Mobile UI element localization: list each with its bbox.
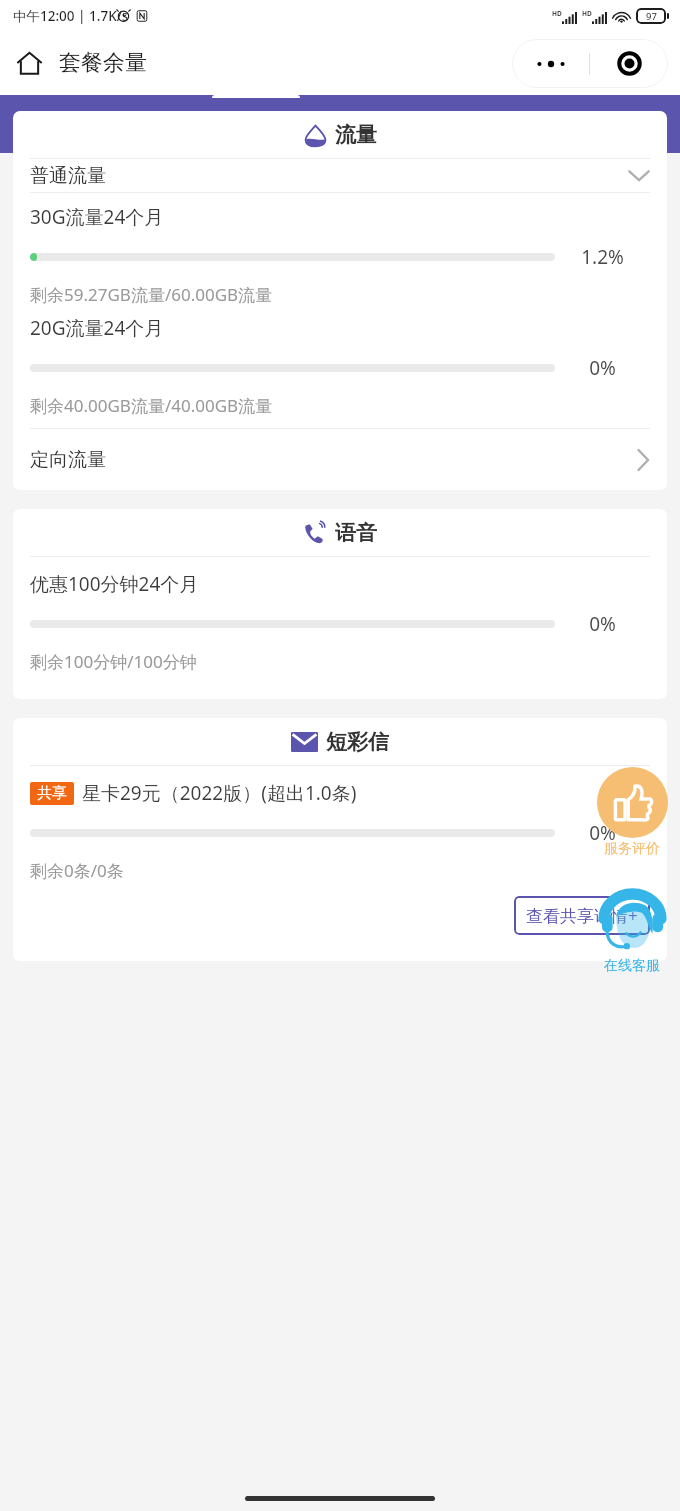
button[interactable]: 普通流量 <box>13 159 667 192</box>
staticText: HD <box>552 9 562 18</box>
staticText: 剩余40.00GB流量/40.00GB流量 <box>30 394 273 417</box>
staticText: 定向流量 <box>30 448 106 472</box>
button[interactable]: More options <box>512 39 589 88</box>
staticText: 普通流量 <box>30 164 106 188</box>
staticText: 0% <box>589 820 616 846</box>
staticText: 97 <box>646 10 657 23</box>
button[interactable]: Close mini program <box>590 39 668 88</box>
button[interactable]: 在线客服 <box>596 884 668 975</box>
staticText: 套餐余量 <box>59 49 147 77</box>
staticText: 流量 <box>335 122 377 148</box>
staticText: 剩余59.27GB流量/60.00GB流量 <box>30 283 273 306</box>
staticText: 1.2% <box>581 244 624 270</box>
staticText: 中午12:00 | 1.7K/s <box>13 7 129 25</box>
staticText: 0% <box>589 611 616 637</box>
button[interactable]: 查看共享详情+ <box>514 896 650 935</box>
staticText: 语音 <box>335 520 377 546</box>
other: Open <box>636 448 650 472</box>
staticText: 查看共享详情+ <box>526 904 638 927</box>
staticText: 星卡29元（2022版）(超出1.0条) <box>82 780 357 806</box>
staticText: 短彩信 <box>326 729 389 755</box>
button[interactable]: 套餐余量 <box>12 45 151 81</box>
button[interactable]: 定向流量 <box>13 429 667 490</box>
staticText: 剩余0条/0条 <box>30 859 124 882</box>
staticText: HD <box>582 9 592 18</box>
staticText: 0% <box>589 355 616 381</box>
staticText: 优惠100分钟24个月 <box>30 571 199 597</box>
staticText: 在线客服 <box>604 957 660 975</box>
other: Collapse <box>628 169 650 182</box>
staticText: 剩余100分钟/100分钟 <box>30 650 197 673</box>
staticText: 共享 <box>37 784 67 803</box>
staticText: 30G流量24个月 <box>30 204 164 230</box>
button[interactable]: 服务评价 <box>596 767 668 858</box>
staticText: 服务评价 <box>604 840 660 858</box>
staticText: 20G流量24个月 <box>30 315 164 341</box>
